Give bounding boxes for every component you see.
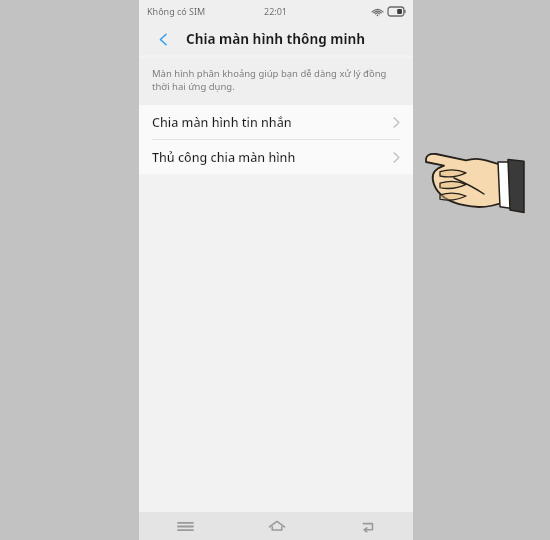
staticText: Không có SIM [147,5,206,17]
button[interactable]: Home [231,512,322,540]
staticText: Màn hình phân khoảng giúp bạn dễ dàng xử… [152,67,397,93]
button[interactable]: Chia màn hình tin nhắn [139,105,413,139]
button[interactable]: Back [322,512,413,540]
staticText: Thủ công chia màn hình [152,149,296,166]
staticText: Chia màn hình tin nhắn [152,114,292,131]
button[interactable]: Recent apps [139,512,231,540]
staticText: Chia màn hình thông minh [186,30,366,48]
button[interactable]: Thủ công chia màn hình [139,140,413,174]
staticText: 22:01 [264,5,288,17]
button[interactable]: Back [150,26,176,52]
